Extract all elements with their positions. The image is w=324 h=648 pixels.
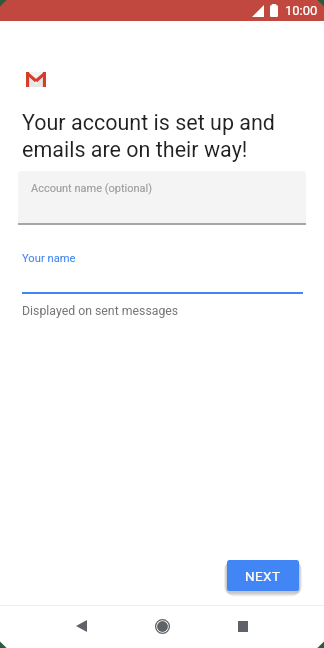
button[interactable]: Account name (optional) (18, 171, 306, 223)
staticText: Your account is set up and emails are on… (22, 110, 275, 163)
staticText: Displayed on sent messages (22, 304, 179, 318)
staticText: NEXT (245, 568, 281, 584)
staticText: Your name (22, 252, 76, 265)
button[interactable]: NEXT (227, 560, 299, 591)
staticText: Account name (optional) (31, 182, 153, 195)
button[interactable]: Back (69, 614, 93, 638)
button[interactable]: Home (150, 614, 174, 638)
button[interactable]: Recent apps (231, 614, 255, 638)
staticText: 10:00 (285, 3, 318, 18)
button[interactable]: Your name (22, 240, 303, 320)
